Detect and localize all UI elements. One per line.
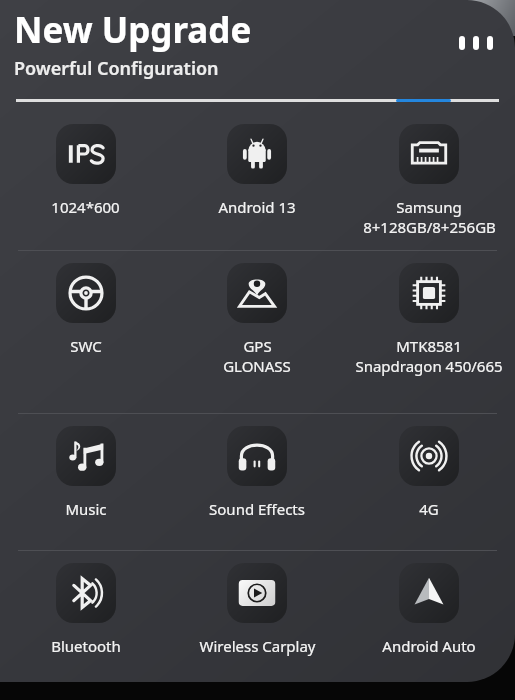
other: Display resolution xyxy=(56,124,116,184)
staticText: 4G xyxy=(419,499,439,519)
other: Wireless Carplay xyxy=(227,563,287,623)
staticText: Bluetooth xyxy=(51,636,121,656)
staticText: GPS xyxy=(243,336,272,356)
button[interactable]: Music xyxy=(0,414,171,550)
button[interactable]: Wireless Carplay xyxy=(171,551,343,682)
other: Steering wheel control xyxy=(56,263,116,323)
other: GPS navigation xyxy=(227,263,287,323)
staticText: Powerful Configuration xyxy=(14,56,219,81)
staticText: Sound Effects xyxy=(209,499,305,519)
staticText: GLONASS xyxy=(223,356,291,376)
button[interactable]: Bluetooth xyxy=(0,551,171,682)
staticText: 1024*600 xyxy=(51,197,120,217)
other: Android version xyxy=(227,124,287,184)
staticText: MTK8581 xyxy=(396,336,462,356)
staticText: Samsung xyxy=(396,197,462,217)
other: Android Auto xyxy=(399,563,459,623)
button[interactable]: Sound effects xyxy=(171,414,343,550)
button[interactable]: Android version xyxy=(171,112,343,250)
button[interactable]: 4G network xyxy=(343,414,515,550)
staticText: Android Auto xyxy=(382,636,476,656)
button[interactable]: GPS navigation xyxy=(171,251,343,413)
button[interactable]: Processor xyxy=(343,251,515,413)
button[interactable]: Memory xyxy=(343,112,515,250)
other: Bluetooth xyxy=(56,563,116,623)
staticText: New Upgrade xyxy=(14,6,252,54)
button[interactable]: More options xyxy=(453,30,499,56)
button[interactable]: Display resolution xyxy=(0,112,171,250)
other: Sound effects xyxy=(227,426,287,486)
staticText: 8+128GB/8+256GB xyxy=(363,217,496,237)
other: Processor xyxy=(399,263,459,323)
staticText: Snapdragon 450/665 xyxy=(355,356,503,376)
other: 4G network xyxy=(399,426,459,486)
other: Memory xyxy=(399,124,459,184)
button[interactable]: Android Auto xyxy=(343,551,515,682)
button[interactable]: Steering wheel control xyxy=(0,251,171,413)
other: Music xyxy=(56,426,116,486)
staticText: Wireless Carplay xyxy=(199,636,316,656)
staticText: Android 13 xyxy=(218,197,296,217)
staticText: SWC xyxy=(70,336,102,356)
staticText: Music xyxy=(65,499,107,519)
